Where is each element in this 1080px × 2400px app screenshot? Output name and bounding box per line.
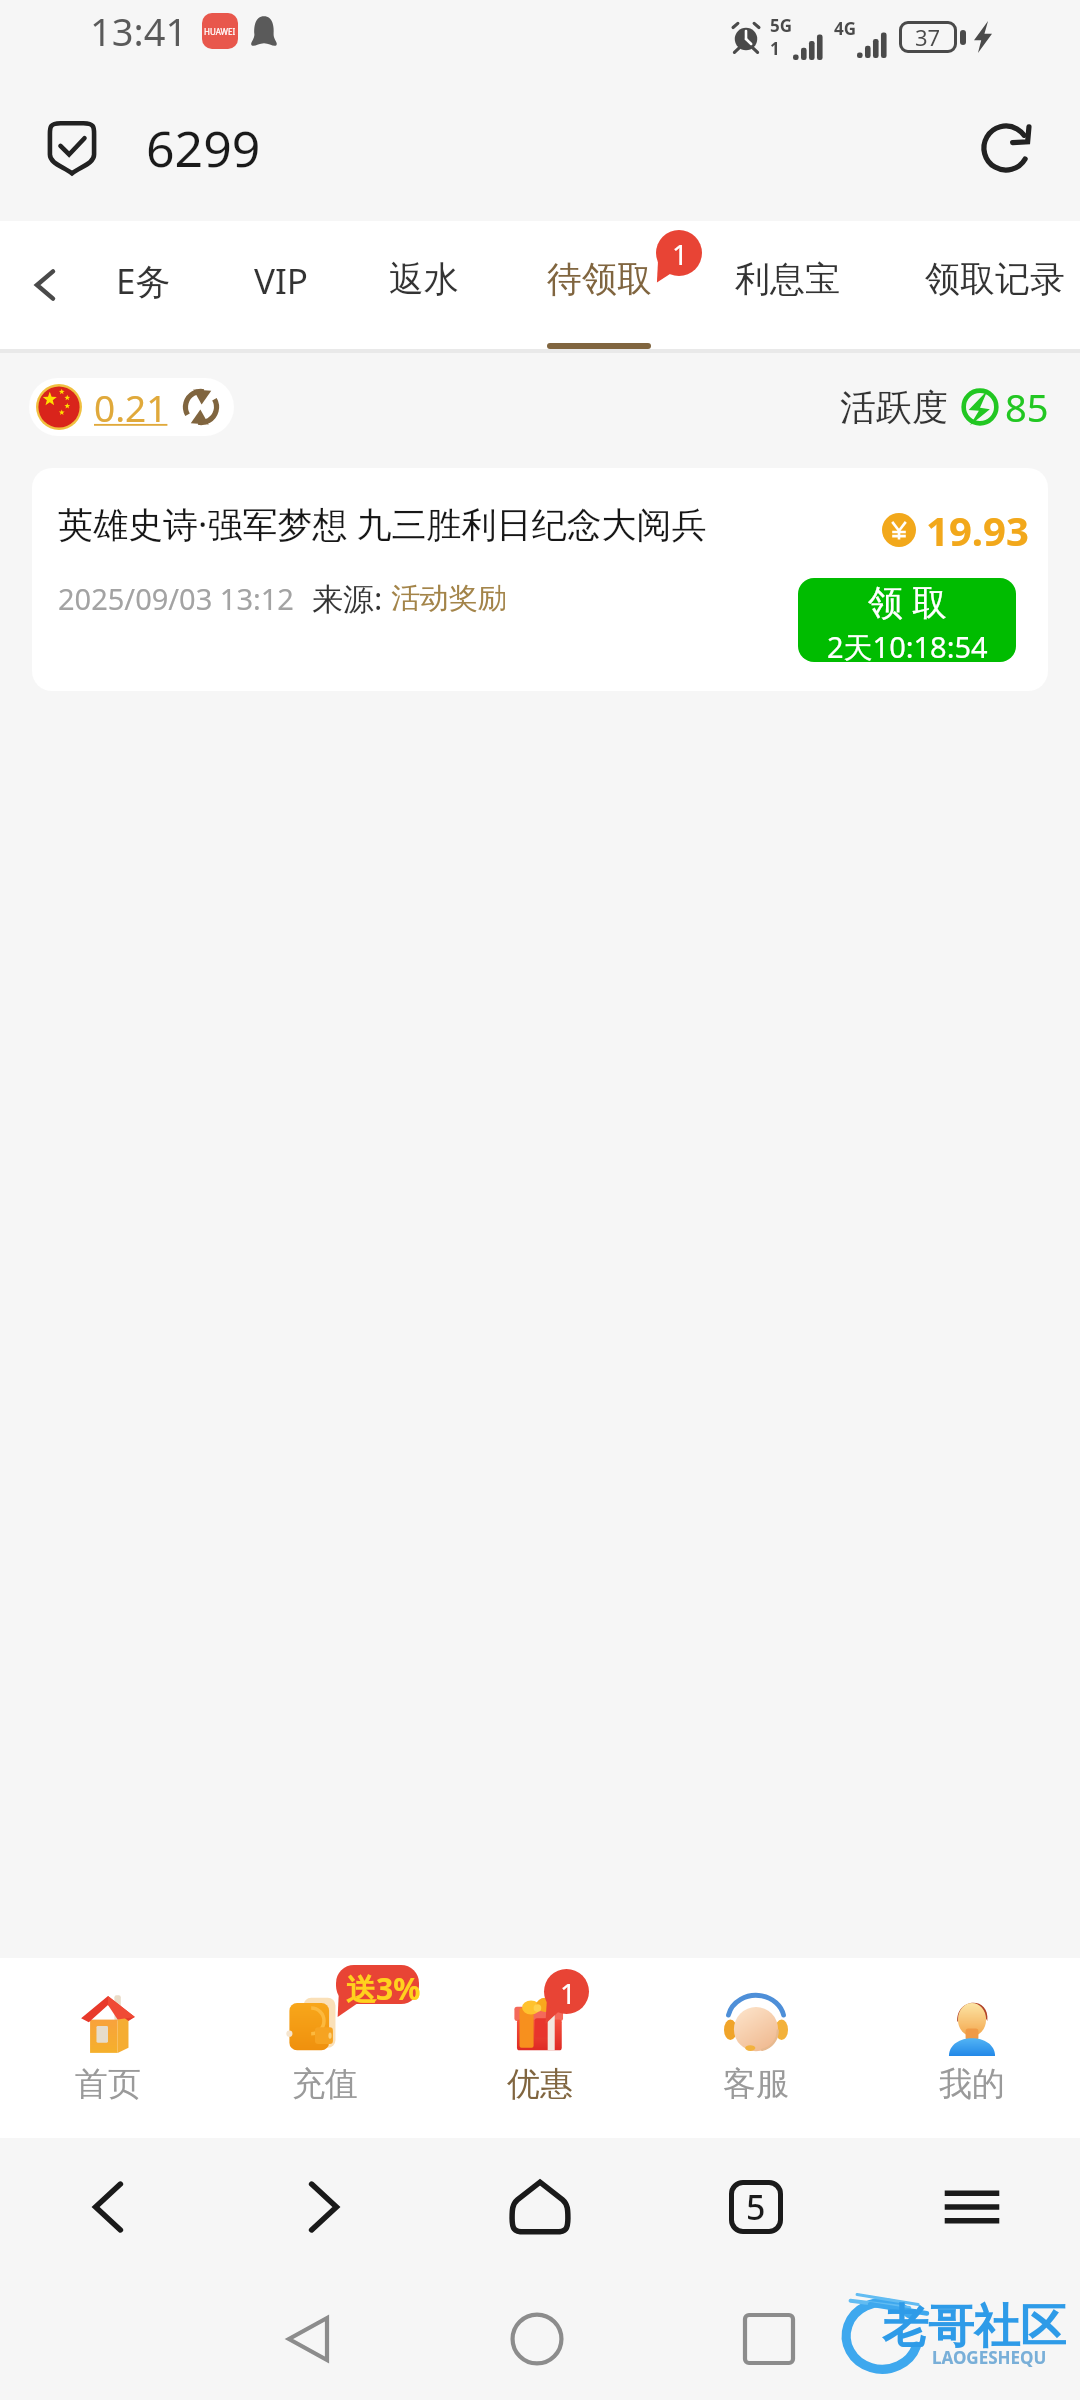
staticText: 首页 [75,2063,141,2105]
staticText: LAOGESHEQU [932,2346,1047,2369]
button[interactable]: 返水 [377,221,471,349]
button[interactable]: 我的 [864,1958,1080,2138]
button[interactable]: Refresh [980,122,1032,174]
staticText: 5G [770,14,793,37]
staticText: 充值 [292,2063,358,2105]
button[interactable]: 领 取 [798,578,1016,662]
staticText: 37 [915,22,941,52]
button[interactable]: 待领取 [535,221,663,349]
staticText: 活动奖励 [391,580,507,617]
staticText: HUAWEI [204,26,236,37]
button[interactable]: E务 [96,221,190,349]
staticText: 活跃度 [840,385,948,430]
staticText: 返水 [389,257,459,301]
staticText: 19.93 [926,503,1029,557]
staticText: 4G [834,17,857,40]
button[interactable]: Back [0,2138,216,2266]
button[interactable]: 1 [432,1958,648,2138]
button[interactable]: Home [432,2138,648,2266]
button[interactable]: 0.21 [29,378,234,436]
staticText: 1 [560,1974,577,2012]
staticText: 客服 [723,2063,789,2105]
button[interactable]: Back [14,221,76,349]
staticText: 利息宝 [735,257,840,301]
button[interactable]: 6299 [48,114,261,182]
button[interactable]: Menu [864,2138,1080,2266]
button[interactable]: Home [497,2266,577,2400]
staticText: E务 [116,257,171,305]
staticText: 老哥社区 [882,2298,1066,2356]
staticText: 1 [672,235,689,273]
staticText: 2025/09/03 13:12 [58,579,294,618]
button[interactable]: Forward [216,2138,432,2266]
button[interactable]: Recents [729,2266,809,2400]
button[interactable]: Tabs [648,2138,864,2266]
staticText: 85 [1005,381,1049,433]
button[interactable]: 英雄史诗·强军梦想 九三胜利日纪念大阅兵 [32,468,1048,691]
staticText: 13:41 [90,5,188,57]
staticText: 送3% [346,1968,421,2009]
staticText: 1 [770,37,780,60]
button[interactable]: 领取记录 [913,221,1077,349]
staticText: 6299 [146,114,261,182]
staticText: 待领取 [547,257,652,301]
staticText: 领 取 [868,578,948,626]
button[interactable]: Back [268,2266,348,2400]
button[interactable]: 送3% [216,1958,432,2138]
staticText: 来源: [312,577,391,619]
button[interactable]: VIP [239,221,323,349]
staticText: 2天10:18:54 [827,627,988,662]
button[interactable]: 利息宝 [723,221,851,349]
button[interactable]: 客服 [648,1958,864,2138]
button[interactable]: 首页 [0,1958,216,2138]
staticText: 优惠 [507,2063,573,2105]
staticText: 我的 [939,2063,1005,2105]
staticText: VIP [254,257,309,305]
staticText: 英雄史诗·强军梦想 九三胜利日纪念大阅兵 [58,500,707,548]
staticText: 5 [746,2184,766,2230]
staticText: 0.21 [94,382,168,432]
staticText: 领取记录 [925,257,1065,301]
